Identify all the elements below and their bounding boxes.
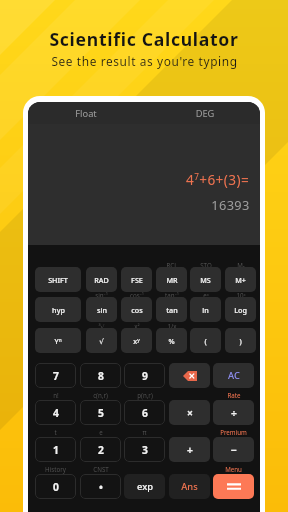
staticText: 9 xyxy=(142,369,148,383)
staticText: 2 xyxy=(98,443,104,457)
button[interactable]: MR xyxy=(156,267,187,292)
staticText: ³√ xyxy=(98,322,105,330)
staticText: hyp xyxy=(52,305,65,315)
button[interactable]: hyp xyxy=(35,297,81,322)
staticText: Scientific Calculator xyxy=(49,27,239,51)
staticText: STO xyxy=(200,261,212,269)
staticText: tan xyxy=(166,305,178,315)
staticText: exp xyxy=(137,480,153,493)
button[interactable]: ( xyxy=(190,328,221,353)
staticText: Log xyxy=(234,305,247,315)
staticText: AC xyxy=(228,369,240,382)
button[interactable]: Equals xyxy=(213,474,254,499)
button[interactable]: ln xyxy=(190,297,221,322)
button[interactable]: sin xyxy=(86,297,117,322)
staticText: M- xyxy=(237,261,245,269)
button[interactable]: 6 xyxy=(124,400,165,425)
staticText: Yⁿ xyxy=(54,336,62,346)
button[interactable]: • xyxy=(80,474,121,499)
button[interactable]: 2 xyxy=(80,437,121,462)
staticText: FSE xyxy=(131,275,143,285)
staticText: c(n,r) xyxy=(93,391,108,399)
staticText: e xyxy=(99,428,103,436)
staticText: n! xyxy=(53,391,59,399)
button[interactable]: 1 xyxy=(35,437,76,462)
button[interactable]: RAD xyxy=(86,267,117,292)
staticText: 8 xyxy=(98,369,104,383)
button[interactable]: Ans xyxy=(169,474,210,499)
button[interactable]: 0 xyxy=(35,474,76,499)
staticText: π xyxy=(142,428,147,436)
staticText: 5 xyxy=(98,406,104,420)
button[interactable]: cos xyxy=(121,297,152,322)
button[interactable]: Backspace xyxy=(169,363,210,388)
staticText: ( xyxy=(204,336,207,346)
staticText: 6 xyxy=(142,406,148,420)
staticText: CNST xyxy=(93,465,109,473)
button[interactable]: MS xyxy=(190,267,221,292)
button[interactable]: FSE xyxy=(121,267,152,292)
button[interactable]: 3 xyxy=(124,437,165,462)
staticText: Ans xyxy=(181,480,198,493)
button[interactable]: exp xyxy=(124,474,165,499)
staticText: p(n,r) xyxy=(137,391,153,399)
button[interactable]: √ xyxy=(86,328,117,353)
button[interactable]: tan xyxy=(156,297,187,322)
button[interactable]: ) xyxy=(225,328,256,353)
button[interactable]: 8 xyxy=(80,363,121,388)
button[interactable]: % xyxy=(156,328,187,353)
staticText: RCL xyxy=(166,261,178,269)
other: Backspace xyxy=(183,371,197,381)
button[interactable]: ÷ xyxy=(213,400,254,425)
staticText: cos xyxy=(131,305,143,315)
button[interactable]: M+ xyxy=(225,267,256,292)
button[interactable]: 7 xyxy=(35,363,76,388)
button[interactable]: − xyxy=(213,437,254,462)
staticText: tan⁻¹ xyxy=(165,291,179,299)
staticText: ÷ xyxy=(231,406,237,420)
staticText: t xyxy=(54,428,57,436)
staticText: × xyxy=(187,406,193,420)
staticText: xʸ xyxy=(133,336,140,346)
staticText: − xyxy=(231,443,237,457)
button[interactable]: SHIFT xyxy=(35,267,81,292)
staticText: See the result as you're typing xyxy=(51,53,238,69)
staticText: 7 xyxy=(53,369,59,383)
staticText: √ xyxy=(99,337,104,345)
staticText: DEG xyxy=(175,107,235,120)
staticText: ) xyxy=(239,336,242,346)
staticText: 10ˣ xyxy=(236,291,246,299)
staticText: ln xyxy=(202,305,209,315)
staticText: MR xyxy=(166,275,178,285)
button[interactable]: + xyxy=(169,437,210,462)
button[interactable]: 5 xyxy=(80,400,121,425)
staticText: cos⁻¹ xyxy=(130,291,144,299)
staticText: M+ xyxy=(235,275,246,285)
button[interactable]: AC xyxy=(213,363,254,388)
staticText: Menu xyxy=(225,465,242,473)
staticText: 1 xyxy=(53,443,59,457)
staticText: 16393 xyxy=(211,196,250,213)
button[interactable]: 4 xyxy=(35,400,76,425)
button[interactable]: Yⁿ xyxy=(35,328,81,353)
staticText: sin xyxy=(97,305,107,315)
staticText: x² xyxy=(134,322,140,330)
staticText: MS xyxy=(200,275,211,285)
staticText: RAD xyxy=(94,275,109,285)
staticText: 1/x xyxy=(167,322,177,330)
staticText: 47+6+(3)= xyxy=(186,170,250,189)
staticText: % xyxy=(168,336,175,346)
staticText: SHIFT xyxy=(48,275,68,285)
button[interactable]: × xyxy=(169,400,210,425)
button[interactable]: 9 xyxy=(124,363,165,388)
staticText: • xyxy=(99,480,103,494)
staticText: Float xyxy=(56,107,116,120)
staticText: History xyxy=(45,465,66,473)
staticText: Rate xyxy=(227,391,241,399)
button[interactable]: xʸ xyxy=(121,328,152,353)
button[interactable]: Log xyxy=(225,297,256,322)
staticText: + xyxy=(187,443,193,457)
staticText: 4 xyxy=(53,406,59,420)
staticText: Premium xyxy=(220,428,247,436)
staticText: 0 xyxy=(53,480,59,494)
